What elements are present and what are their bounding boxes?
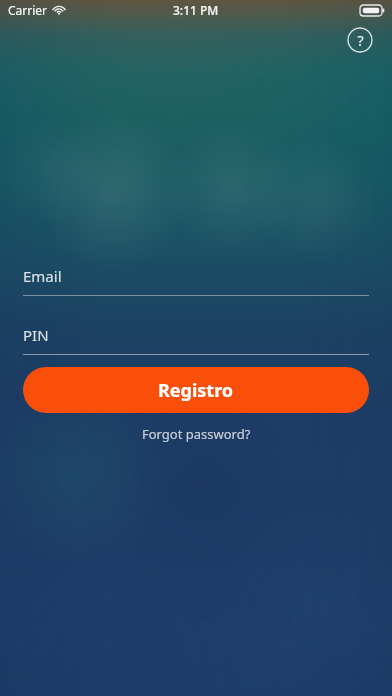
button[interactable]: PIN [23, 325, 369, 354]
staticText: Forgot password? [142, 425, 251, 443]
staticText: PIN [23, 325, 49, 345]
staticText: 3:11 PM [173, 2, 219, 18]
button[interactable]: Email [23, 266, 369, 295]
button[interactable]: Help [347, 27, 373, 53]
staticText: Carrier [8, 2, 48, 18]
staticText: Email [23, 266, 62, 286]
staticText: Registro [158, 378, 234, 403]
staticText: ? [357, 31, 364, 50]
button[interactable]: Registro [23, 367, 369, 413]
button[interactable]: Forgot password? [136, 422, 257, 446]
